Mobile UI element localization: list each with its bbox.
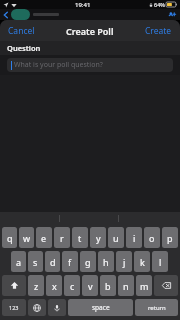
staticText: s (33, 256, 38, 268)
other: Add participant (168, 11, 176, 19)
button[interactable]: h (98, 251, 114, 272)
button[interactable]: d (45, 251, 60, 272)
staticText: e (41, 232, 47, 244)
staticText: t (78, 232, 82, 244)
staticText: f (68, 256, 72, 268)
button[interactable]: f (62, 251, 78, 272)
staticText: 19:41 (75, 1, 91, 9)
staticText: j (123, 256, 126, 268)
staticText: x (52, 280, 57, 292)
staticText: i (133, 232, 136, 244)
button[interactable]: Cancel (0, 21, 43, 41)
button[interactable]: Create (137, 21, 180, 41)
staticText: z (34, 280, 39, 292)
staticText: Question (7, 43, 41, 53)
staticText: k (140, 256, 145, 268)
button[interactable]: Switch keyboard (28, 299, 46, 316)
staticText: return (148, 304, 166, 312)
button[interactable]: o (144, 227, 160, 248)
button[interactable]: return (135, 299, 178, 316)
other: Back (3, 12, 9, 18)
staticText: y (96, 232, 101, 244)
button[interactable]: v (82, 275, 98, 296)
button[interactable]: Dictate (48, 299, 66, 316)
button[interactable]: u (108, 227, 124, 248)
staticText: space (92, 303, 110, 312)
staticText: d (50, 256, 56, 268)
staticText: v (88, 280, 93, 292)
button[interactable]: i (126, 227, 142, 248)
staticText: What is your poll question? (14, 60, 103, 70)
button[interactable]: t (72, 227, 88, 248)
button[interactable]: What is your poll question? (7, 58, 173, 72)
button[interactable]: Backspace (154, 275, 178, 296)
button[interactable]: c (64, 275, 80, 296)
staticText: b (105, 280, 111, 292)
staticText: c (70, 280, 75, 292)
staticText: p (167, 232, 173, 244)
button[interactable]: w (19, 227, 34, 248)
button[interactable]: k (134, 251, 150, 272)
staticText: a (16, 256, 22, 268)
staticText: g (85, 256, 91, 268)
button[interactable]: n (118, 275, 134, 296)
button[interactable]: e (36, 227, 52, 248)
staticText: o (149, 232, 155, 244)
staticText: q (7, 232, 13, 244)
button[interactable]: g (80, 251, 96, 272)
button[interactable]: r (54, 227, 70, 248)
staticText: 64% (154, 1, 165, 8)
staticText: h (103, 256, 109, 268)
button[interactable]: x (46, 275, 62, 296)
button[interactable]: y (90, 227, 106, 248)
button[interactable]: z (28, 275, 44, 296)
button[interactable]: 123 (2, 299, 26, 316)
button[interactable]: a (11, 251, 26, 272)
button[interactable]: space (68, 299, 133, 316)
button[interactable]: p (162, 227, 178, 248)
button[interactable]: s (28, 251, 43, 272)
staticText: w (23, 232, 31, 244)
staticText: Create Poll (66, 25, 114, 37)
staticText: m (140, 280, 149, 292)
button[interactable]: l (152, 251, 168, 272)
staticText: u (113, 232, 119, 244)
staticText: Create (145, 25, 172, 37)
staticText: 123 (9, 304, 19, 311)
staticText: r (60, 232, 64, 244)
button[interactable]: Shift (2, 275, 26, 296)
button[interactable]: b (100, 275, 116, 296)
staticText: n (123, 280, 129, 292)
button[interactable]: j (116, 251, 132, 272)
button[interactable]: q (2, 227, 17, 248)
staticText: l (159, 256, 162, 268)
staticText: Cancel (8, 25, 35, 37)
button[interactable]: m (136, 275, 152, 296)
